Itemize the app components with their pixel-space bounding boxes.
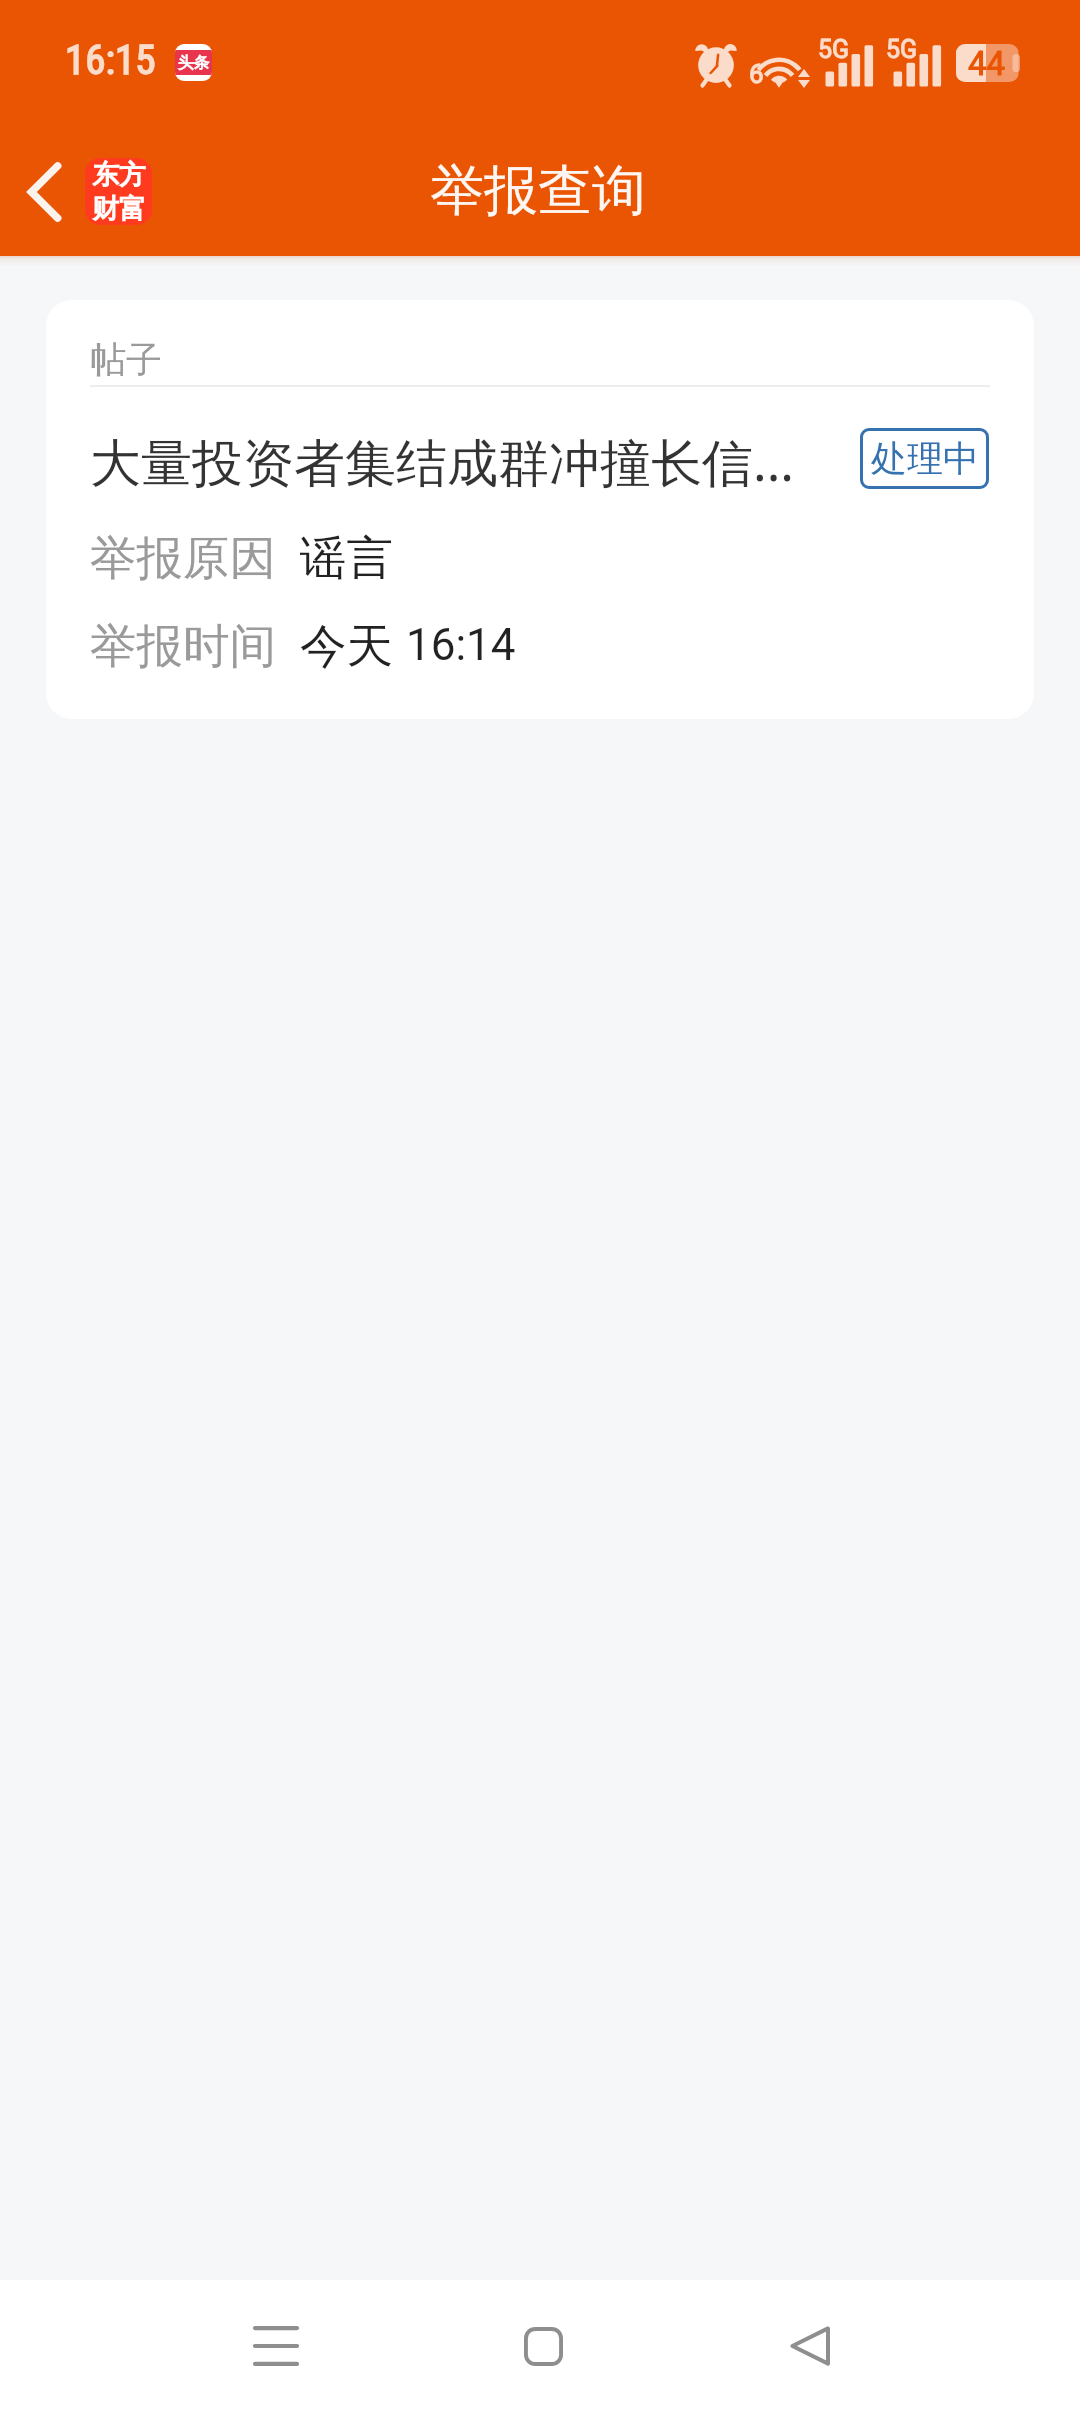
staticText: 6 xyxy=(749,59,764,89)
staticText: 举报原因 xyxy=(90,529,276,588)
staticText: 大量投资者集结成群冲撞长信... xyxy=(90,426,795,496)
staticText: 处理中 xyxy=(871,436,979,481)
button[interactable]: Back xyxy=(720,2280,900,2412)
staticText: 举报查询 xyxy=(430,157,646,225)
staticText: 举报时间 xyxy=(90,617,276,676)
staticText: 帖子 xyxy=(90,337,162,382)
button[interactable]: Recent apps xyxy=(186,2280,366,2412)
staticText: 16:14 xyxy=(406,619,516,671)
staticText: 44 xyxy=(968,44,1006,82)
staticText: 今天 xyxy=(300,617,393,676)
button[interactable]: Home xyxy=(453,2280,633,2412)
staticText: 5G xyxy=(886,35,918,64)
button[interactable]: Back xyxy=(0,128,96,256)
button[interactable]: 帖子 xyxy=(46,300,1034,719)
staticText: 财富 xyxy=(92,192,146,225)
staticText: 头条 xyxy=(178,53,209,73)
staticText: 5G xyxy=(818,35,850,64)
staticText: 谣言 xyxy=(300,529,393,588)
staticText: 16:15 xyxy=(65,36,156,84)
staticText: 东方 xyxy=(92,158,146,192)
button[interactable]: 处理中 xyxy=(860,428,989,489)
